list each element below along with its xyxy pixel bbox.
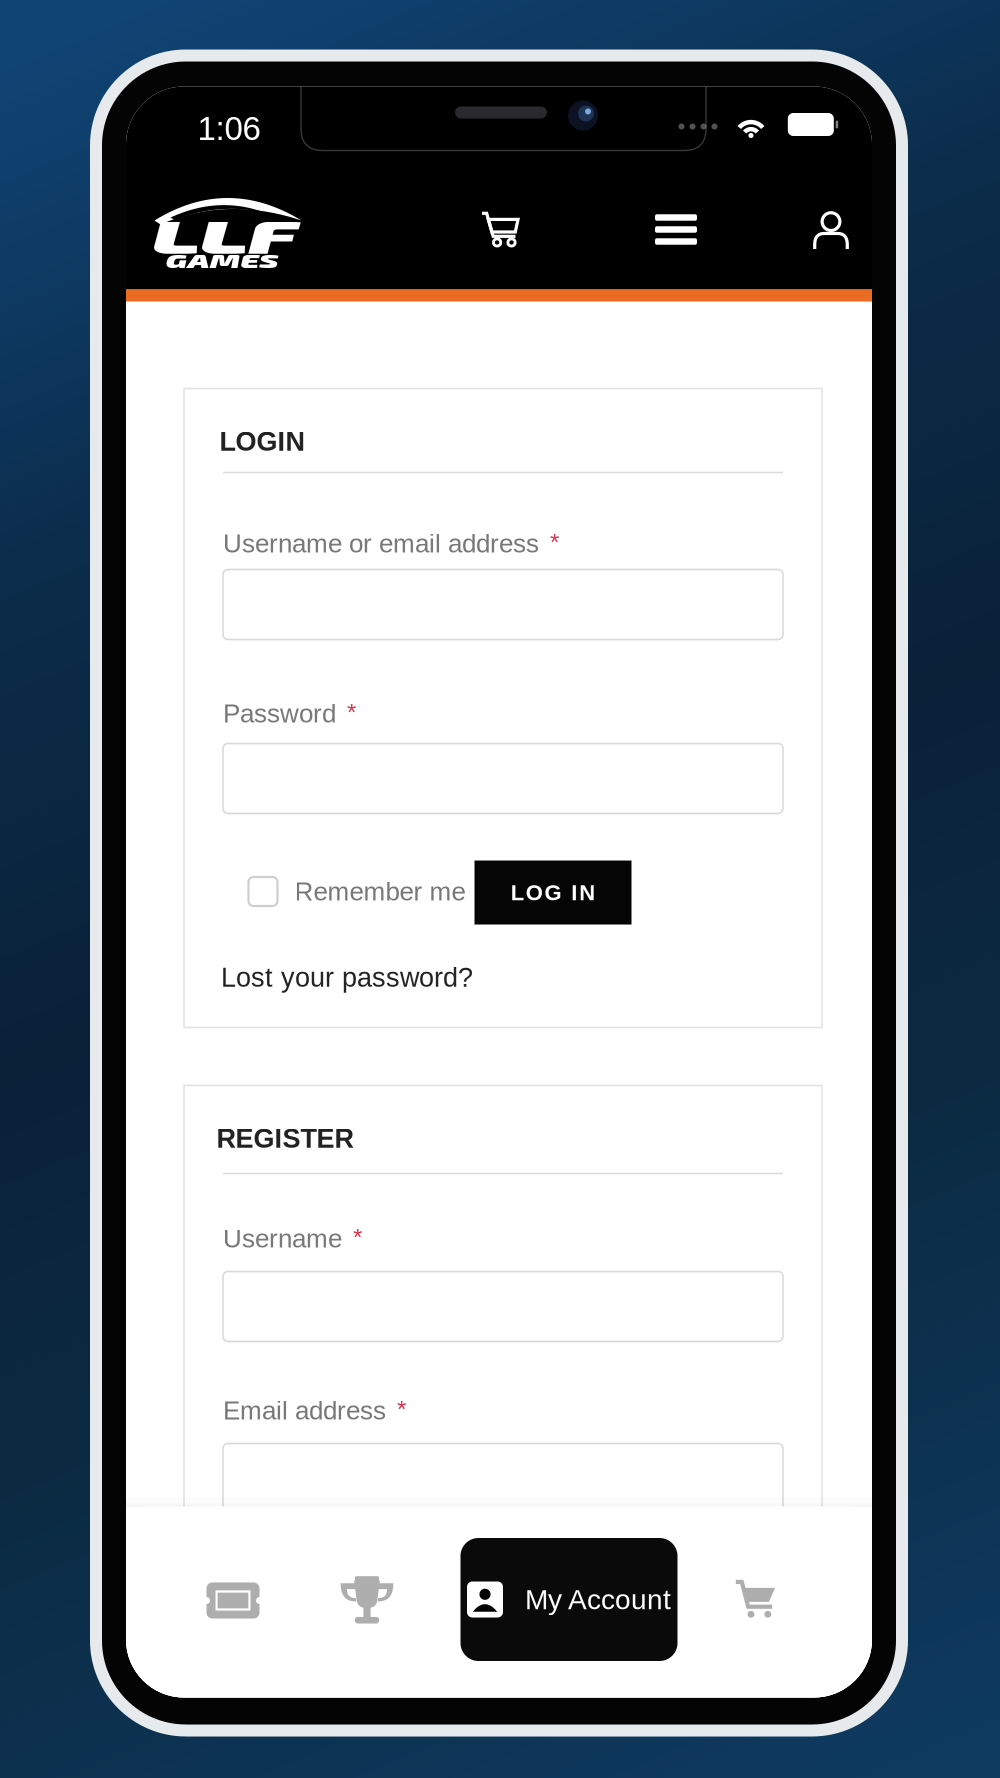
staticText: Password bbox=[223, 699, 336, 728]
button[interactable]: Winners bbox=[307, 1543, 427, 1659]
button[interactable]: My Account bbox=[460, 1538, 677, 1661]
button[interactable]: Remember me bbox=[248, 867, 465, 916]
staticText: LOG IN bbox=[511, 880, 595, 905]
staticText: LOGIN bbox=[219, 426, 304, 457]
button[interactable]: LLF Games home bbox=[144, 183, 309, 275]
staticText: Lost your password? bbox=[221, 962, 473, 993]
button[interactable]: Menu bbox=[635, 194, 717, 265]
staticText: Username or email address bbox=[223, 529, 539, 558]
staticText: * bbox=[347, 699, 356, 726]
staticText: Email address bbox=[223, 1396, 386, 1425]
staticText: Username bbox=[223, 1224, 342, 1253]
staticText: GAMES bbox=[188, 249, 254, 272]
button[interactable]: My account bbox=[792, 192, 869, 269]
button[interactable]: Cart bbox=[695, 1541, 815, 1657]
staticText: * bbox=[353, 1224, 362, 1251]
staticText: * bbox=[550, 529, 559, 556]
button[interactable]: Lost your password? bbox=[221, 956, 473, 999]
staticText: LLF bbox=[186, 208, 262, 263]
button[interactable]: My tickets bbox=[173, 1542, 293, 1658]
staticText: My Account bbox=[525, 1584, 671, 1615]
button[interactable]: Cart bbox=[462, 191, 538, 267]
staticText: Remember me bbox=[294, 877, 465, 906]
button[interactable]: LOG IN bbox=[474, 860, 631, 924]
staticText: 1:06 bbox=[197, 110, 260, 147]
staticText: REGISTER bbox=[216, 1123, 353, 1154]
staticText: * bbox=[397, 1396, 406, 1423]
